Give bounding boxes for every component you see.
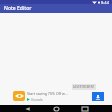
staticText: ADVERTISEMENT xyxy=(73,85,95,89)
staticText: Google xyxy=(31,97,43,101)
staticText: Start saving 70% Off w... xyxy=(27,91,68,96)
button[interactable]: Start saving 70% Off w... xyxy=(0,91,112,101)
button[interactable]: Install xyxy=(92,92,104,101)
button[interactable]: Back xyxy=(18,105,36,112)
button[interactable]: Recent apps xyxy=(76,105,94,112)
staticText: Note Editor xyxy=(4,5,32,12)
button[interactable]: Home xyxy=(47,105,65,112)
staticText: 8:44 xyxy=(101,0,109,4)
